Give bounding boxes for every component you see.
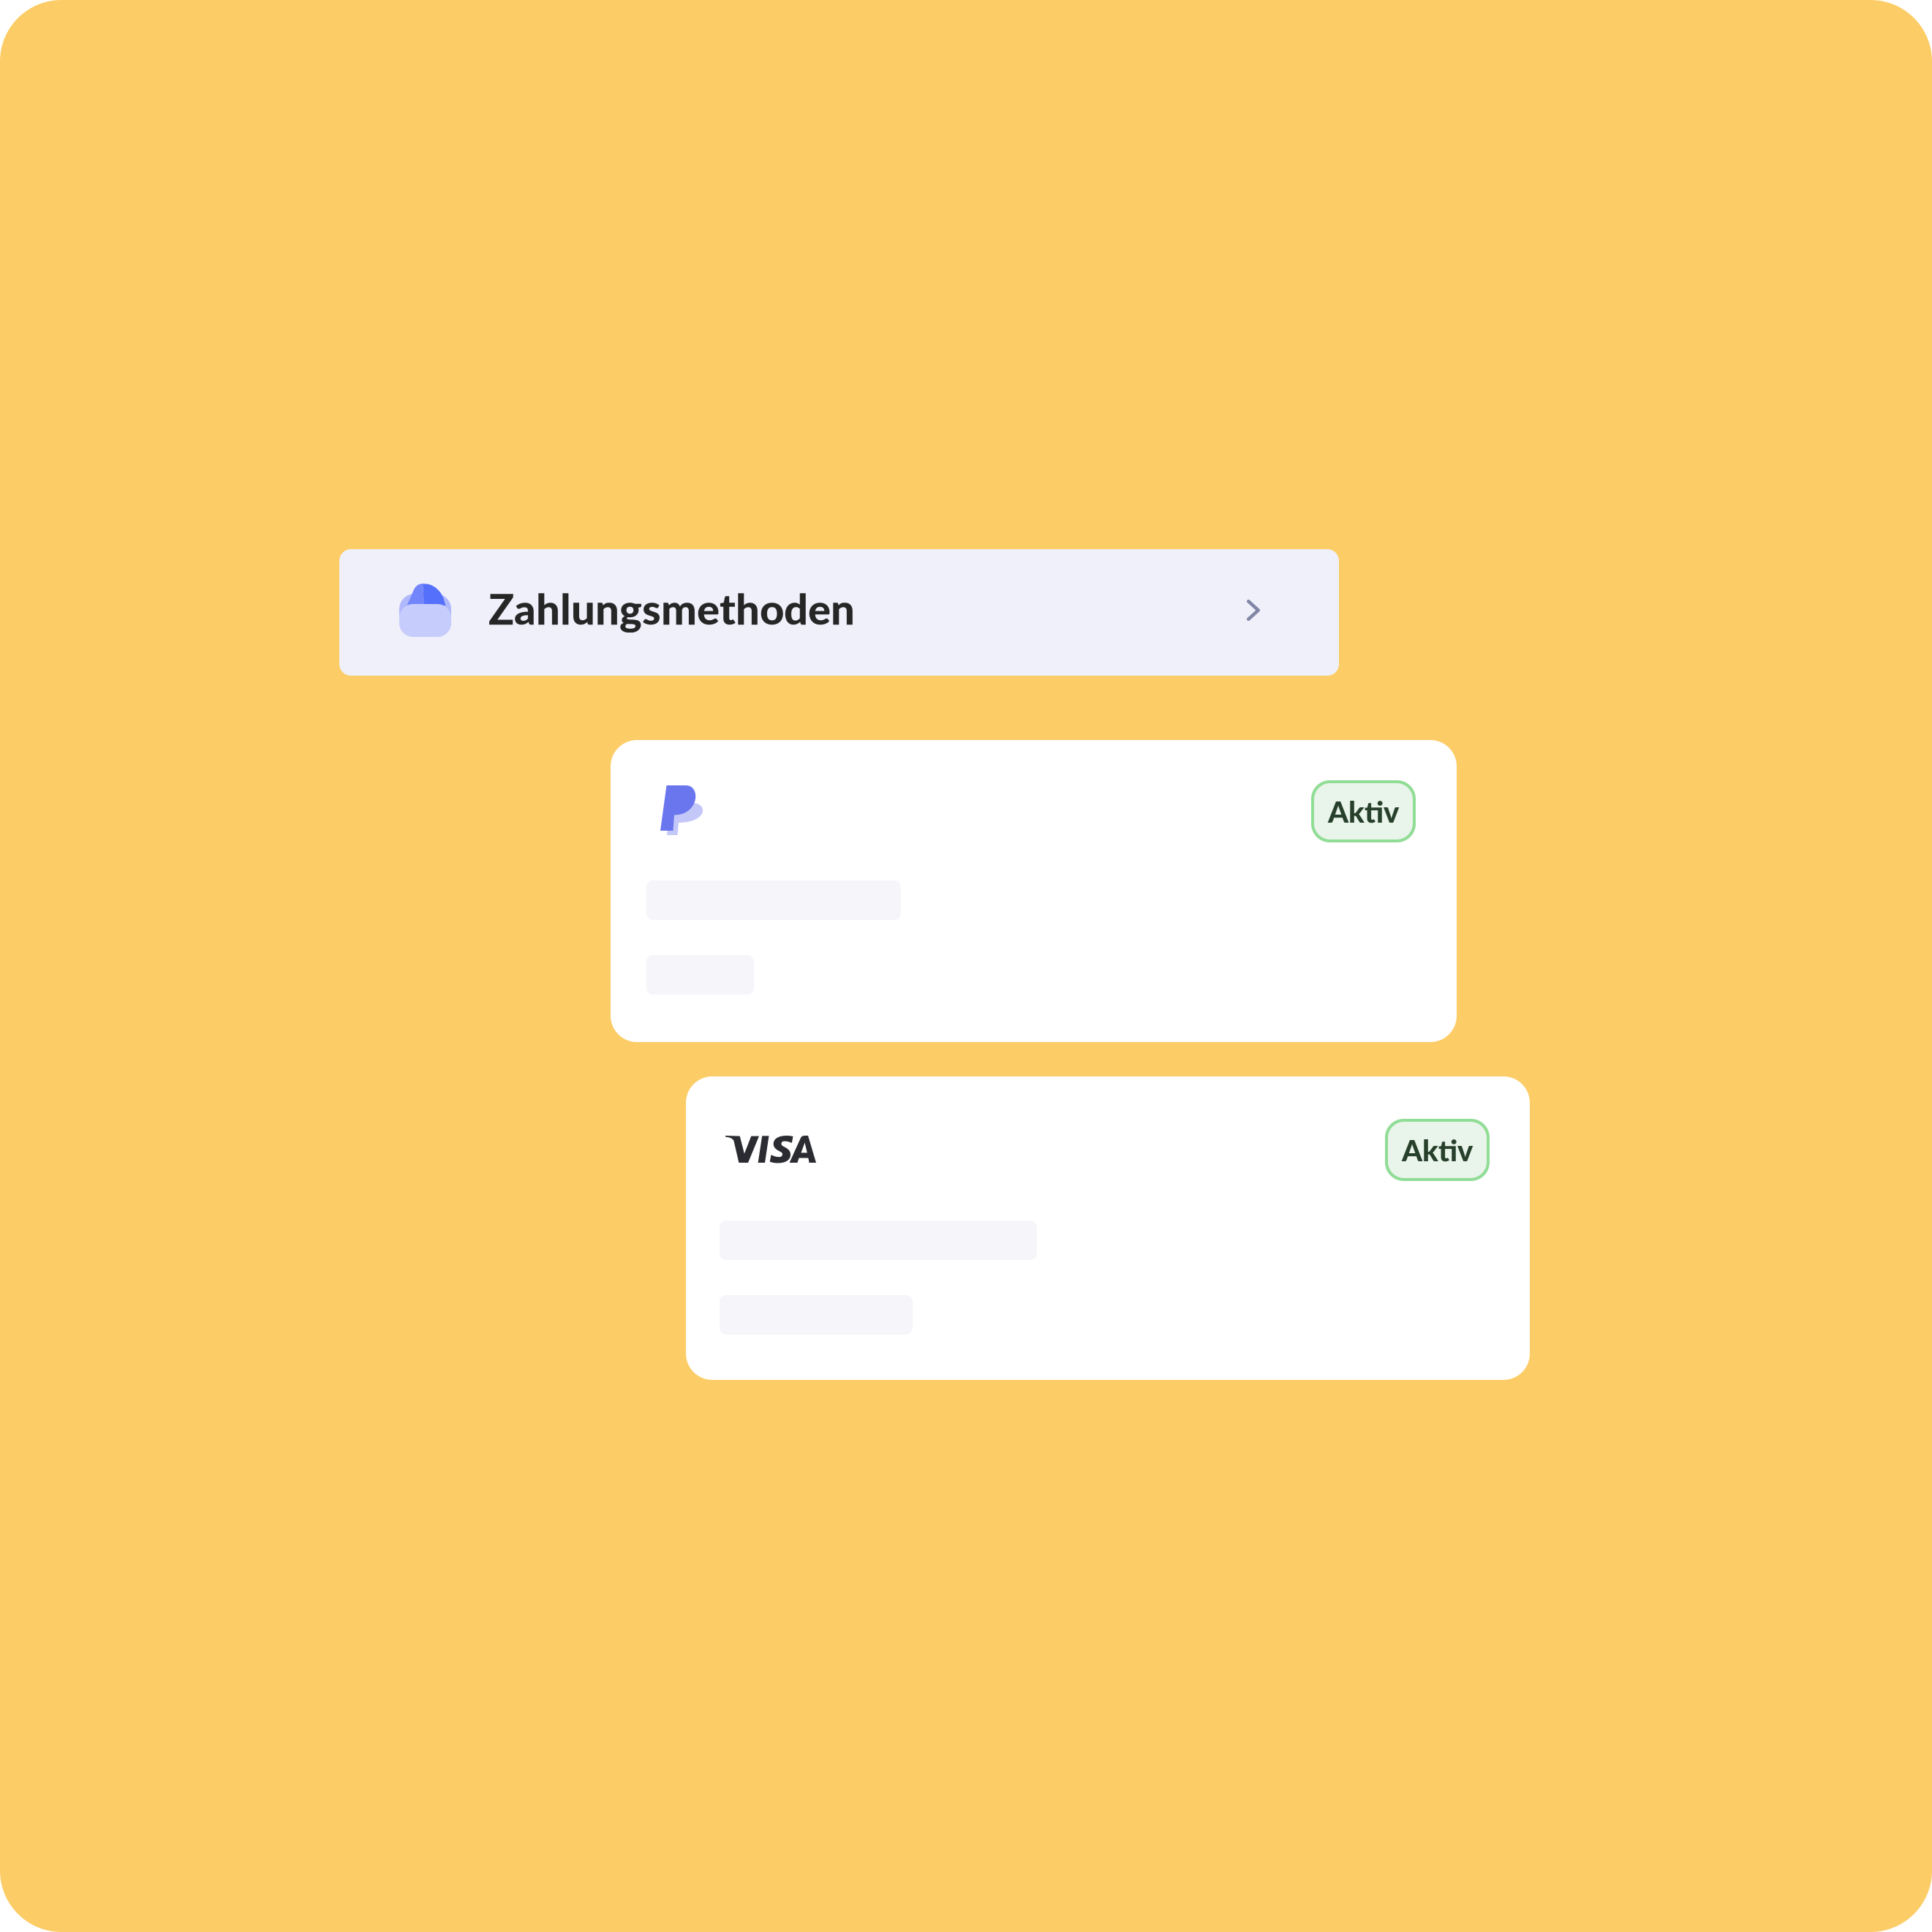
staticText: Aktiv <box>1328 794 1399 829</box>
button[interactable]: Zahlungsmethoden <box>339 549 1339 676</box>
button[interactable]: PayPal, Aktiv <box>611 740 1457 1042</box>
button[interactable]: Visa, Aktiv <box>686 1076 1530 1380</box>
staticText: Zahlungsmethoden <box>488 583 855 634</box>
staticText: Aktiv <box>1402 1132 1473 1167</box>
